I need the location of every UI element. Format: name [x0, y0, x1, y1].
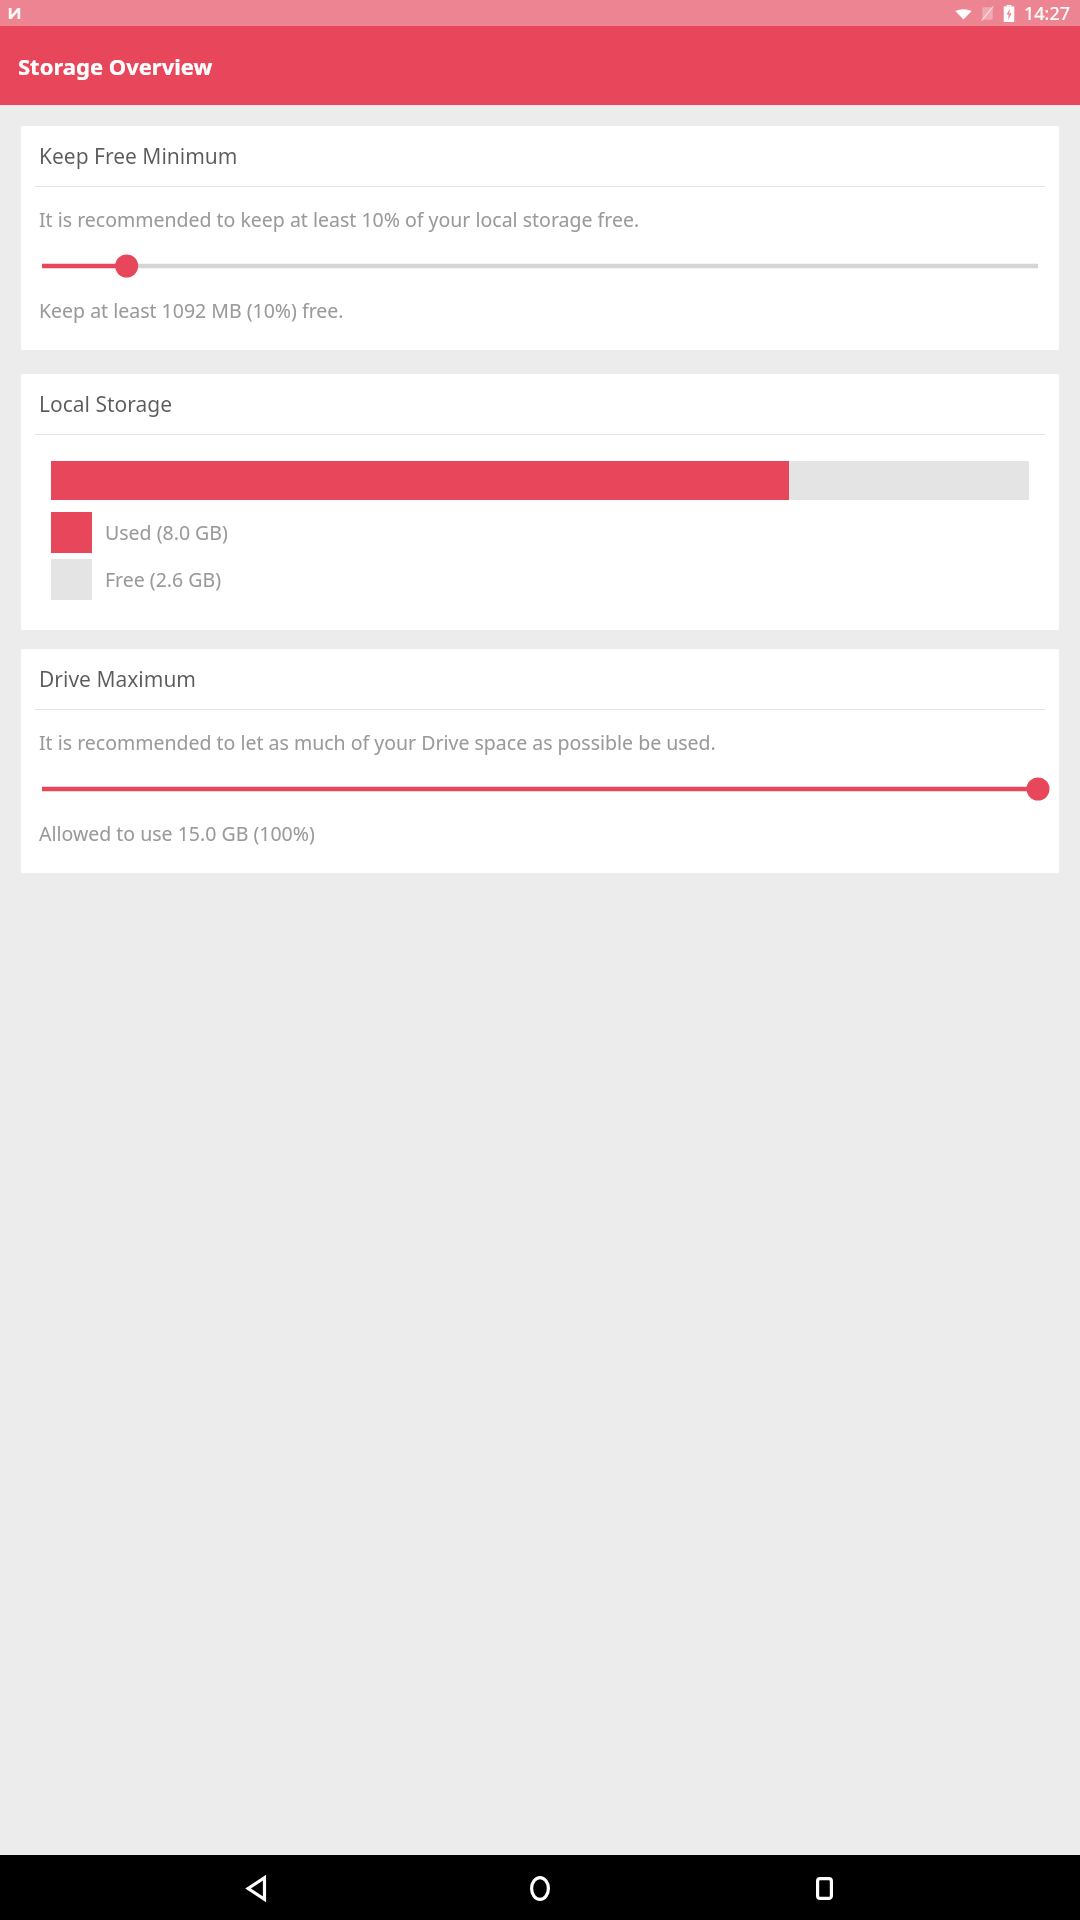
staticText: Keep at least 1092 MB (10%) free. — [39, 297, 344, 324]
staticText: Local Storage — [39, 390, 173, 419]
button[interactable]: Free (2.6 GB) — [51, 559, 1029, 600]
staticText: It is recommended to keep at least 10% o… — [39, 206, 640, 233]
button[interactable]: Storage slider — [21, 246, 1059, 286]
button[interactable]: Back — [228, 1860, 284, 1916]
button[interactable]: Storage slider — [21, 769, 1059, 809]
button[interactable]: Used (8.0 GB) — [51, 512, 1029, 553]
button[interactable]: Home — [512, 1860, 568, 1916]
staticText: Allowed to use 15.0 GB (100%) — [39, 820, 315, 847]
staticText: Free (2.6 GB) — [105, 566, 222, 593]
staticText: Storage Overview — [18, 51, 213, 81]
staticText: 14:27 — [1024, 1, 1071, 26]
staticText: Used (8.0 GB) — [105, 519, 228, 546]
staticText: Keep Free Minimum — [39, 142, 238, 171]
staticText: It is recommended to let as much of your… — [39, 729, 716, 756]
button[interactable]: Recents — [796, 1860, 852, 1916]
staticText: Drive Maximum — [39, 665, 196, 694]
